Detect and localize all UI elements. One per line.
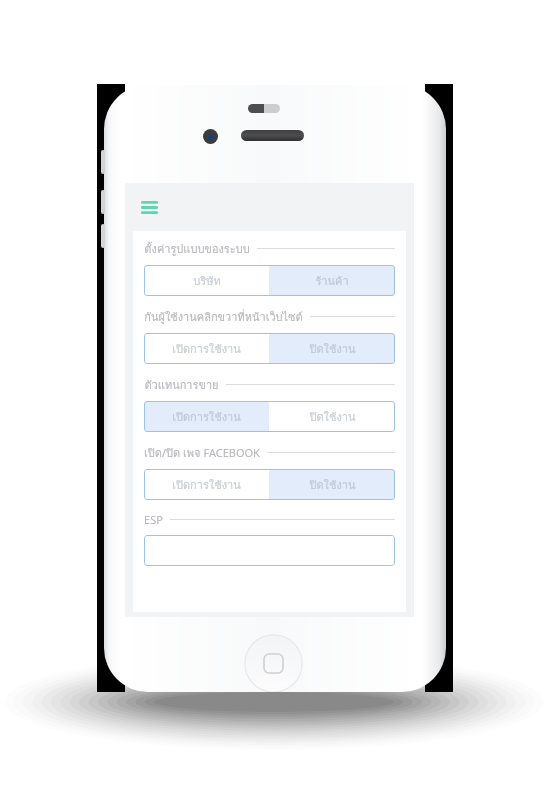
staticText: เปิดการใช้งาน xyxy=(172,476,241,493)
staticText: ปิดใช้งาน xyxy=(309,476,356,493)
button[interactable]: เปิดการใช้งาน xyxy=(144,401,269,432)
button[interactable]: เปิดการใช้งาน xyxy=(144,469,269,500)
button[interactable]: ปิดใช้งาน xyxy=(269,469,395,500)
button[interactable]: ร้านค้า xyxy=(269,265,395,296)
staticText: เปิดการใช้งาน xyxy=(172,340,241,357)
button[interactable]: ปิดใช้งาน xyxy=(269,333,395,364)
button[interactable]: Menu xyxy=(134,194,164,220)
button[interactable]: บริษัท xyxy=(144,265,269,296)
staticText: ตั้งค่ารูปแบบของระบบ xyxy=(144,240,250,257)
button[interactable]: เปิดการใช้งาน xyxy=(144,333,269,364)
staticText: ESP xyxy=(144,512,163,527)
staticText: ร้านค้า xyxy=(315,272,349,289)
staticText: กันผู้ใช้งานคลิกขวาที่หน้าเว็บไซต์ xyxy=(144,308,303,325)
staticText: ปิดใช้งาน xyxy=(309,408,356,425)
button[interactable]: ปิดใช้งาน xyxy=(269,401,395,432)
staticText: ปิดใช้งาน xyxy=(309,340,356,357)
staticText: เปิด/ปิด เพจ FACEBOOK xyxy=(144,444,260,461)
staticText: เปิดการใช้งาน xyxy=(172,408,241,425)
staticText: ตัวแทนการขาย xyxy=(144,376,219,393)
button[interactable] xyxy=(144,535,395,566)
staticText: บริษัท xyxy=(193,272,221,289)
button[interactable]: Home xyxy=(244,634,303,692)
